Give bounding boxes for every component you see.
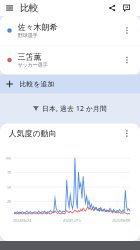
button[interactable]: 共有 — [106, 0, 119, 16]
button[interactable]: メニュー — [0, 0, 20, 16]
staticText: 日本, 過去 12 か月間 — [42, 104, 107, 113]
button[interactable]: フィードバック — [119, 0, 140, 16]
staticText: 100 — [5, 155, 11, 161]
staticText: 人気度の動向 — [9, 129, 57, 138]
button[interactable]: その他のオプション — [126, 128, 140, 139]
staticText: 三笘薫 — [17, 52, 41, 62]
staticText: 比較 — [20, 2, 38, 14]
staticText: 比較を追加 — [19, 80, 54, 88]
staticText: 2025/06/08 — [112, 217, 130, 223]
staticText: 2024/06/24 — [13, 217, 31, 223]
staticText: 25 — [7, 199, 11, 204]
button[interactable]: 日本, 過去 12 か月間 — [29, 101, 111, 116]
staticText: 50 — [7, 184, 11, 190]
staticText: 野球選手 — [17, 32, 37, 39]
button[interactable]: 比較を追加 — [0, 74, 140, 93]
staticText: サッカー選手 — [17, 62, 47, 68]
button[interactable]: 佐々木朗希 — [0, 16, 140, 45]
staticText: 75 — [7, 170, 11, 175]
staticText: 2024/12/15 — [62, 217, 80, 223]
staticText: 佐々木朗希 — [17, 22, 57, 32]
button[interactable]: 三笘薫 — [0, 45, 140, 74]
